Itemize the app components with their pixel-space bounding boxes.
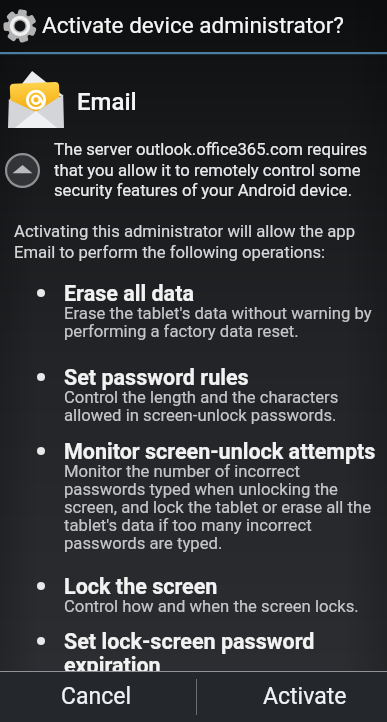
button[interactable]: Cancel [0,672,196,722]
staticText: Control the length and the characters al… [64,388,339,425]
staticText: Activate device administrator? [42,12,344,38]
button[interactable] [5,153,40,188]
staticText: Erase the tablet's data without warning … [64,304,372,341]
staticText: Monitor the number of incorrect password… [64,462,371,553]
button[interactable]: Activate [197,672,387,722]
staticText: Control how and when the screen locks. [64,597,359,617]
staticText: Lock the screen [64,574,218,599]
staticText: Erase all data [64,281,194,306]
staticText: Set password rules [64,365,249,390]
staticText: Email [77,88,137,116]
staticText: Activating this administrator will allow… [14,222,356,262]
staticText: Activate [263,683,347,710]
staticText: Set lock-screen password expiration [64,629,315,678]
staticText: Cancel [61,683,132,710]
staticText: Monitor screen-unlock attempts [64,439,376,464]
staticText: The server outlook.office365.com require… [54,140,368,200]
